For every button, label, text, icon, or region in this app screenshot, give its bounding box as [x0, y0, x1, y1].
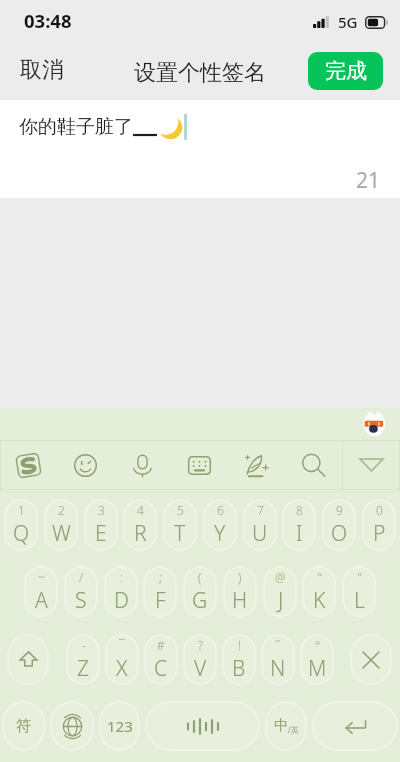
button[interactable]: 1 — [4, 499, 38, 551]
button[interactable]: 3 — [84, 499, 118, 551]
staticText: 21 — [356, 166, 381, 195]
staticText: ° — [315, 637, 321, 653]
staticText: ( — [198, 569, 202, 585]
staticText: ) — [238, 569, 242, 585]
button[interactable]: Delete — [350, 634, 392, 685]
button[interactable]: Space — [145, 701, 260, 751]
staticText: 123 — [107, 716, 133, 736]
staticText: Q — [13, 519, 30, 548]
button[interactable]: ! — [222, 634, 256, 685]
button[interactable]: : — [104, 566, 138, 617]
button[interactable]: search — [285, 440, 342, 490]
button[interactable]: Switch language — [50, 701, 94, 751]
button[interactable]: / — [64, 566, 98, 617]
staticText: N — [270, 654, 286, 683]
button[interactable]: 6 — [203, 499, 237, 551]
button[interactable]: 5 — [163, 499, 197, 551]
button[interactable]: 4 — [123, 499, 157, 551]
staticText: X — [116, 654, 128, 683]
staticText: “ — [318, 569, 322, 585]
staticText: - — [82, 637, 86, 653]
button[interactable]: kb — [171, 440, 228, 490]
staticText: Z — [77, 654, 90, 683]
button[interactable]: ( — [183, 566, 217, 617]
staticText: U — [252, 519, 268, 548]
staticText: F — [155, 586, 166, 615]
staticText: T — [174, 519, 186, 548]
button[interactable]: ˜ — [261, 634, 295, 685]
button[interactable]: sogou — [0, 440, 57, 490]
staticText: C — [154, 654, 168, 683]
staticText: 3 — [98, 502, 105, 518]
staticText: 设置个性签名 — [134, 59, 266, 87]
staticText: ! — [238, 637, 241, 653]
button[interactable]: # — [144, 634, 178, 685]
button[interactable]: ° — [300, 634, 334, 685]
staticText: 1 — [18, 502, 25, 518]
staticText: ~ — [38, 569, 45, 585]
staticText: 5G — [338, 12, 358, 32]
staticText: 2 — [58, 502, 65, 518]
staticText: E — [95, 519, 107, 548]
staticText: G — [192, 586, 208, 615]
staticText: 7 — [257, 502, 264, 518]
staticText: 5 — [177, 502, 184, 518]
button[interactable]: ¯ — [105, 634, 139, 685]
button[interactable]: 7 — [243, 499, 277, 551]
staticText: O — [331, 519, 348, 548]
button[interactable]: - — [66, 634, 100, 685]
staticText: / — [79, 569, 84, 585]
staticText: 取消 — [20, 56, 64, 84]
button[interactable]: 9 — [322, 499, 356, 551]
button[interactable]: ) — [223, 566, 257, 617]
button[interactable]: pen — [228, 440, 285, 490]
staticText: B — [232, 654, 246, 683]
staticText: ; — [159, 569, 162, 585]
staticText: A — [35, 586, 48, 615]
staticText: 6 — [217, 502, 224, 518]
button[interactable]: 取消 — [0, 40, 84, 100]
button[interactable]: 中 — [265, 701, 307, 751]
staticText: L — [354, 586, 365, 615]
staticText: I — [296, 519, 303, 548]
button[interactable]: mic — [114, 440, 171, 490]
button[interactable]: @ — [263, 566, 297, 617]
button[interactable]: Enter — [312, 701, 398, 751]
staticText: # — [157, 637, 165, 653]
button[interactable]: 完成 — [308, 52, 383, 90]
staticText: Y — [214, 519, 226, 548]
staticText: ? — [198, 637, 204, 653]
staticText: H — [232, 586, 248, 615]
staticText: S — [75, 586, 87, 615]
staticText: /英 — [288, 724, 299, 735]
staticText: : — [120, 569, 123, 585]
staticText: V — [194, 654, 207, 683]
staticText: 8 — [296, 502, 303, 518]
button[interactable]: ; — [143, 566, 177, 617]
staticText: M — [308, 654, 327, 683]
button[interactable]: 2 — [44, 499, 78, 551]
staticText: 完成 — [325, 58, 367, 84]
button[interactable]: ” — [342, 566, 376, 617]
staticText: 你的鞋子脏了 — [19, 115, 133, 139]
button[interactable]: emoji — [57, 440, 114, 490]
staticText: 符 — [16, 717, 31, 736]
staticText: 03:48 — [24, 8, 72, 33]
staticText: W — [52, 519, 71, 548]
staticText: 中 — [274, 717, 288, 735]
button[interactable]: ~ — [24, 566, 58, 617]
staticText: K — [313, 586, 326, 615]
staticText: P — [373, 519, 386, 548]
button[interactable]: Hide keyboard — [342, 440, 400, 490]
button[interactable]: 0 — [362, 499, 396, 551]
button[interactable]: 123 — [99, 701, 140, 751]
button[interactable]: 8 — [282, 499, 316, 551]
staticText: 0 — [376, 502, 383, 518]
button[interactable]: “ — [302, 566, 336, 617]
button[interactable]: ? — [183, 634, 217, 685]
staticText: 9 — [336, 502, 343, 518]
button[interactable]: Shift — [7, 634, 49, 685]
staticText: R — [134, 519, 147, 548]
staticText: D — [114, 586, 129, 615]
button[interactable]: 符 — [2, 701, 45, 751]
